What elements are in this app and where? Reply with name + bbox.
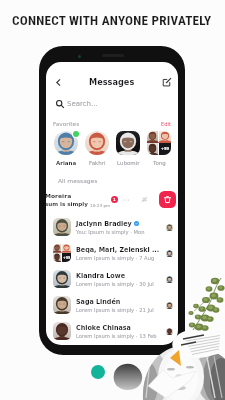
button[interactable]: +99 xyxy=(53,240,173,266)
button[interactable]: Compose message xyxy=(159,75,173,89)
button[interactable]: Kiandra Lowe xyxy=(53,266,173,292)
staticText: Lorem Ipsum is simply · 30 Jul xyxy=(76,281,154,287)
staticText: Beqa, Marl, Zelenski ... xyxy=(76,246,160,253)
button[interactable]: Search... xyxy=(56,98,178,110)
staticText: Moreira xyxy=(46,192,72,199)
button[interactable]: Edit xyxy=(161,121,172,127)
staticText: CONNECT WITH ANYONE PRIVATELY xyxy=(12,13,212,28)
button[interactable]: More options xyxy=(120,194,131,205)
staticText: Favorites xyxy=(53,121,80,128)
button[interactable]: Mute conversation xyxy=(139,194,150,205)
button[interactable]: Ariana xyxy=(54,131,78,166)
button[interactable]: Delete conversation xyxy=(159,191,176,208)
staticText: sum is simply xyxy=(46,201,88,208)
staticText: All messages xyxy=(58,177,98,184)
staticText: Chioke Chinasa xyxy=(76,324,131,331)
button[interactable]: Chioke Chinasa xyxy=(53,318,173,344)
button[interactable]: +99 xyxy=(147,131,171,166)
staticText: Messages xyxy=(89,77,135,87)
staticText: Ariana xyxy=(56,160,77,166)
staticText: Jaclynn Bradley xyxy=(76,220,132,227)
button[interactable]: Saga Lindén xyxy=(53,292,173,318)
staticText: You: lpsum is simply · Mon xyxy=(76,229,145,235)
staticText: Search... xyxy=(67,100,98,108)
staticText: Kiandra Lowe xyxy=(76,272,125,279)
staticText: Fakhri xyxy=(89,160,106,166)
button[interactable]: Back xyxy=(51,75,65,89)
staticText: Lubomir xyxy=(117,160,140,166)
button[interactable]: Unread messages xyxy=(111,196,118,203)
staticText: +99 xyxy=(161,147,170,151)
staticText: 1 xyxy=(113,198,116,202)
button[interactable]: Jaclynn Bradley xyxy=(53,214,173,240)
staticText: 10:23 pm xyxy=(90,203,111,208)
staticText: Tong xyxy=(153,160,166,166)
staticText: Lorem Ipsum is simply · 21 Jul xyxy=(76,307,154,313)
staticText: Saga Lindén xyxy=(76,298,121,305)
staticText: Lorem Ipsum is simply · 7 Aug xyxy=(76,255,155,261)
button[interactable]: Lubomir xyxy=(116,131,140,166)
staticText: +99 xyxy=(63,256,71,260)
button[interactable]: Fakhri xyxy=(85,131,109,166)
staticText: Lorem Ipsum is simply · 13 Feb xyxy=(76,333,157,339)
